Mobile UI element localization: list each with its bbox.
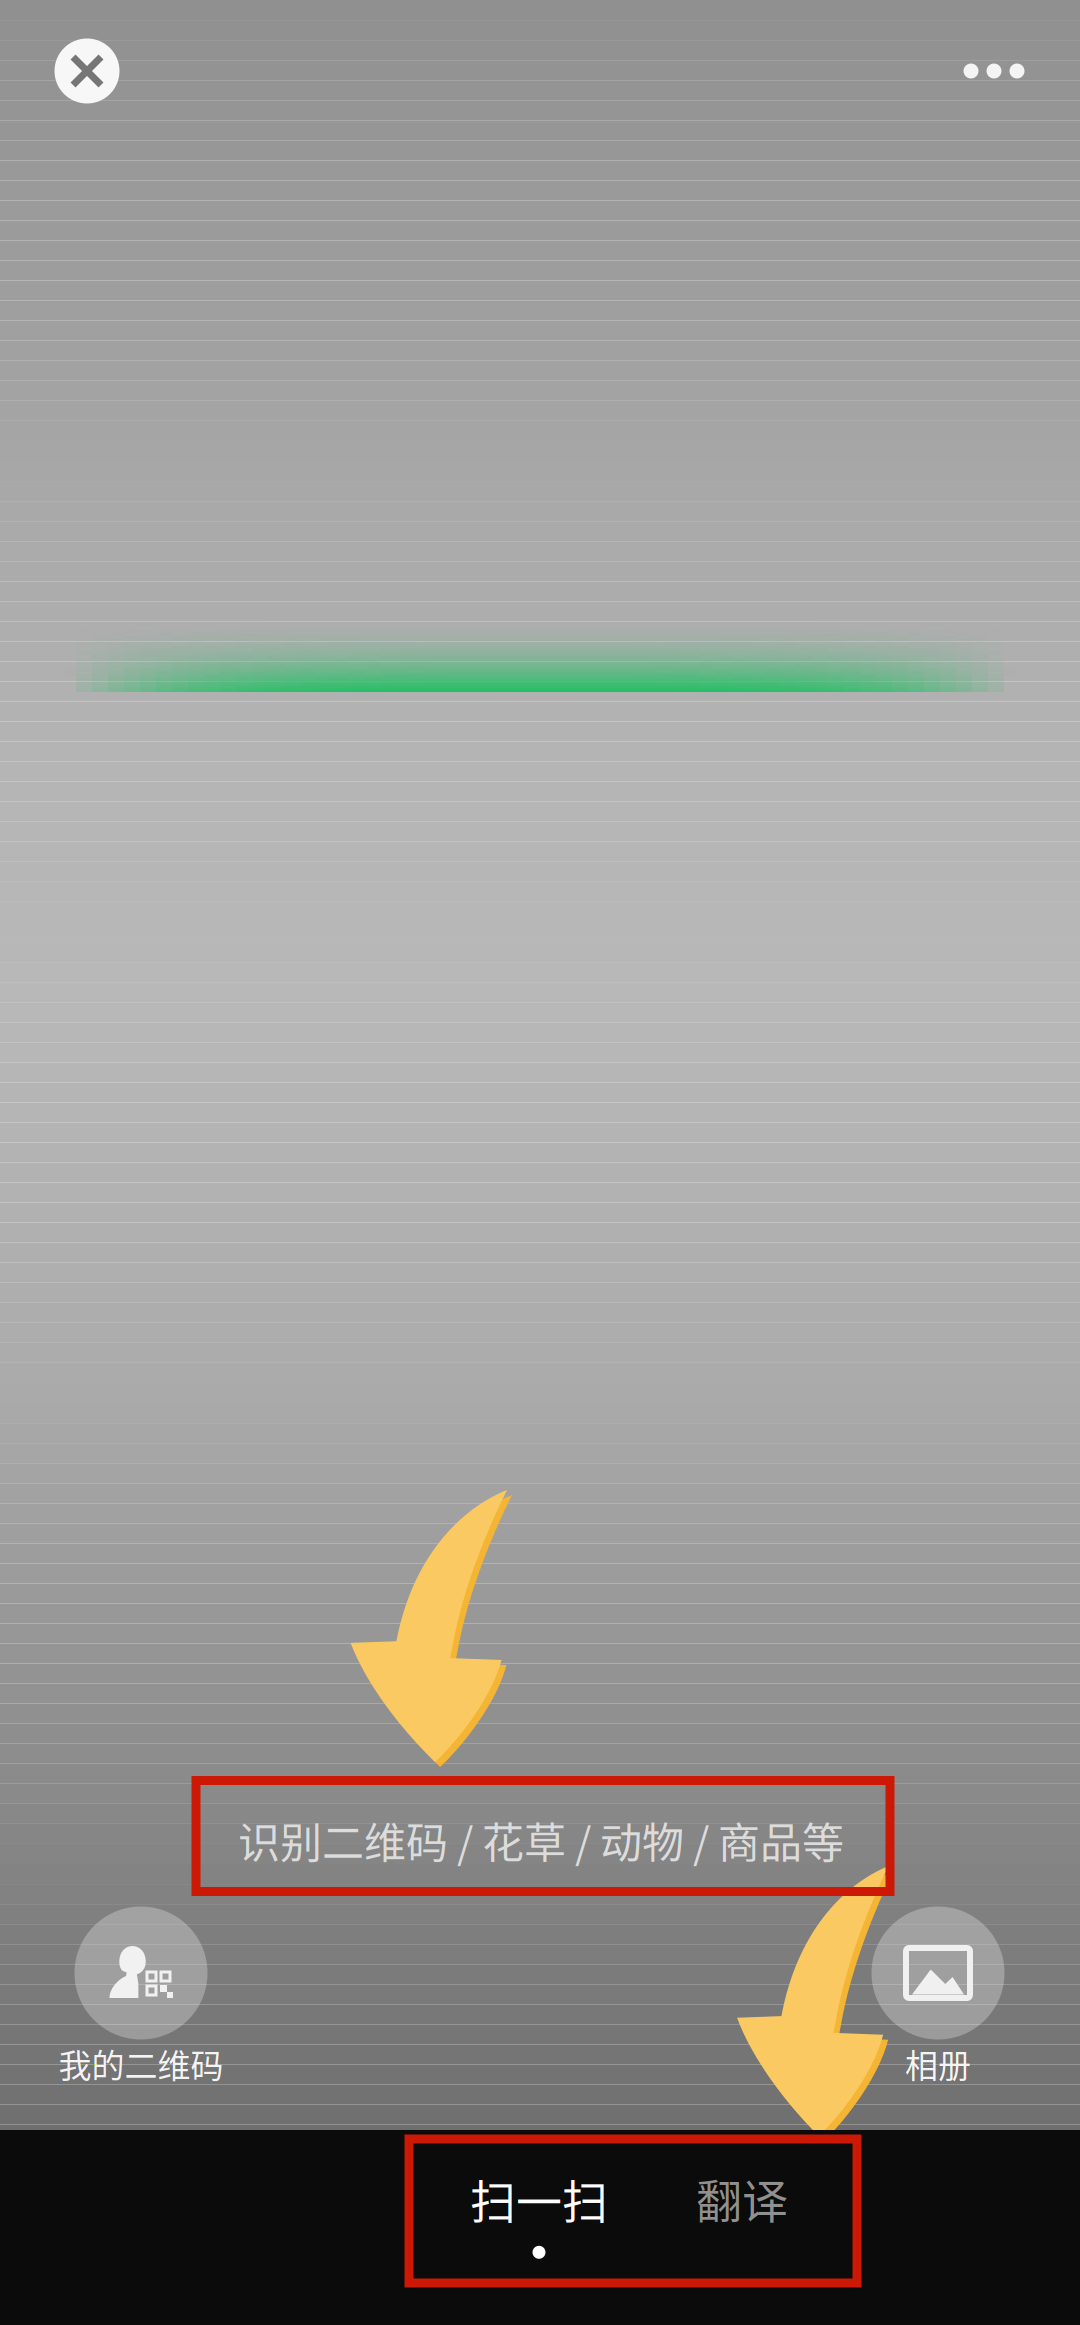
staticText: 翻译 — [696, 2165, 788, 2231]
button[interactable]: 我的二维码 — [21, 1906, 261, 2087]
button[interactable]: More options — [934, 23, 1054, 119]
staticText: 相册 — [905, 2040, 971, 2087]
button[interactable]: Close — [39, 23, 135, 119]
button[interactable]: 翻译 — [667, 2133, 817, 2263]
staticText: 扫一扫 — [470, 2165, 608, 2232]
staticText: 识别二维码 / 花草 / 动物 / 商品等 — [238, 1810, 844, 1870]
staticText: 我的二维码 — [58, 2040, 223, 2087]
button[interactable]: 扫一扫 — [432, 2145, 646, 2278]
button[interactable]: 相册 — [818, 1906, 1058, 2087]
